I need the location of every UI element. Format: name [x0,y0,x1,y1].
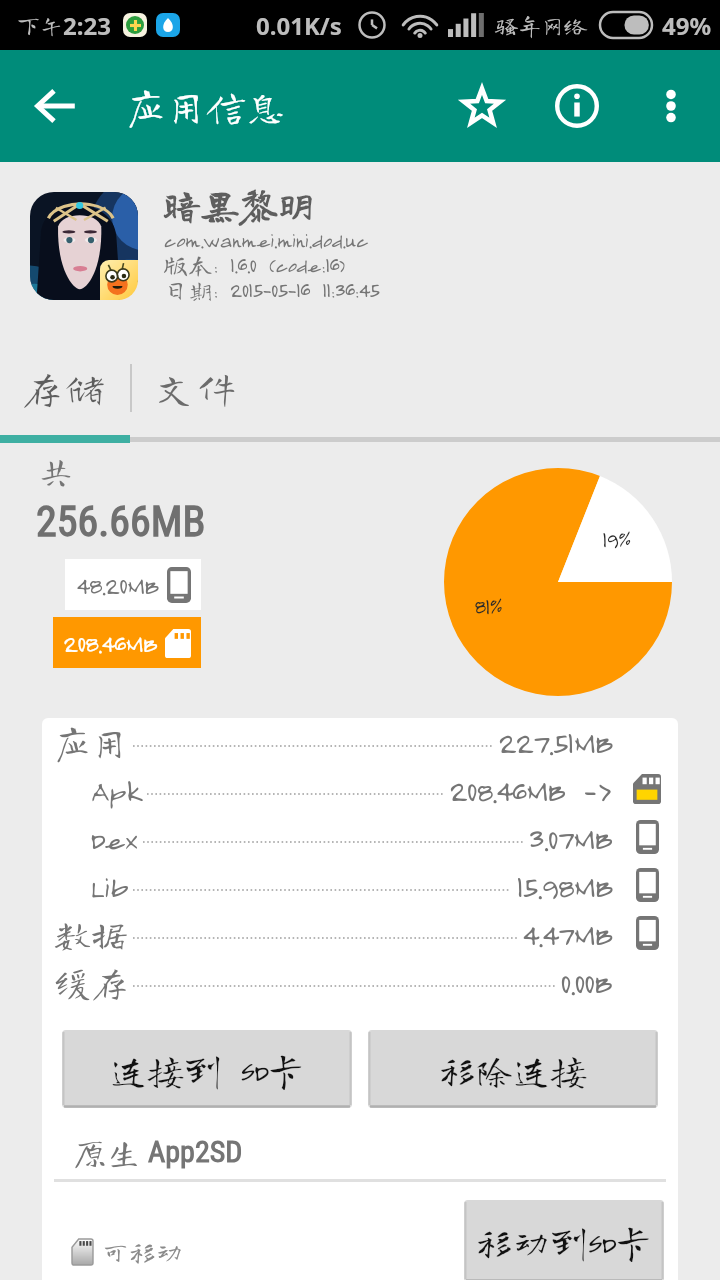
button[interactable]: More options [631,50,711,162]
staticText: Dex [90,819,138,856]
button[interactable]: 文件 [132,348,262,428]
staticText: Lib [90,867,128,904]
button[interactable]: 存储 [0,348,130,428]
staticText: 数据 [54,915,128,952]
staticText: 应用信息 [126,86,286,126]
staticText: 15.98MB [516,867,612,904]
staticText: 208.46MB -> [449,771,612,808]
button[interactable]: 连接到 SD卡 [62,1030,352,1108]
staticText: com.wanmei.mini.dod.uc [163,227,368,252]
other: WiFi [404,12,436,38]
staticText: 暗黑黎明 [163,186,316,224]
staticText: App2SD [148,1134,243,1169]
staticText: 版本: 1.6.0 (code:16) [163,252,345,277]
staticText: 共 [38,452,75,488]
staticText: 连接到 SD卡 [110,1051,305,1088]
staticText: 可移动 [102,1238,183,1265]
button[interactable]: 移动到SD卡 [464,1200,664,1280]
other: Battery [600,12,652,38]
button[interactable]: 移除连接 [368,1030,658,1108]
staticText: 文件 [154,368,240,408]
staticText: 存储 [22,368,108,408]
staticText: 原生 [73,1135,141,1169]
staticText: 81% [474,593,502,619]
staticText: 208.46MB [63,628,157,658]
staticText: 227.51MB [498,723,612,760]
staticText: 0.01K/s [256,9,342,42]
other: Signal [448,13,480,37]
staticText: 4.47MB [522,915,612,952]
staticText: 移除连接 [439,1051,587,1088]
staticText: 下午 [17,14,63,37]
staticText: 48.20MB [76,570,159,600]
staticText: 移动到SD卡 [476,1223,652,1260]
button[interactable]: Info [535,50,619,162]
button[interactable]: Favorite [440,50,524,162]
staticText: 256.66MB [36,497,206,546]
other: Alarm [358,11,386,39]
staticText: Apk [90,771,142,808]
staticText: 缓存 [54,963,128,1000]
staticText: 应用 [54,723,128,760]
staticText: 19% [602,526,631,552]
staticText: 2:23 [63,9,111,42]
staticText: 骚年网络 [495,14,587,37]
staticText: 0.00B [560,963,612,1000]
button[interactable]: Back [0,50,112,162]
staticText: 日期: 2015-05-16 11:36:45 [163,277,379,302]
staticText: 3.07MB [528,819,612,856]
staticText: 49% [662,9,712,42]
